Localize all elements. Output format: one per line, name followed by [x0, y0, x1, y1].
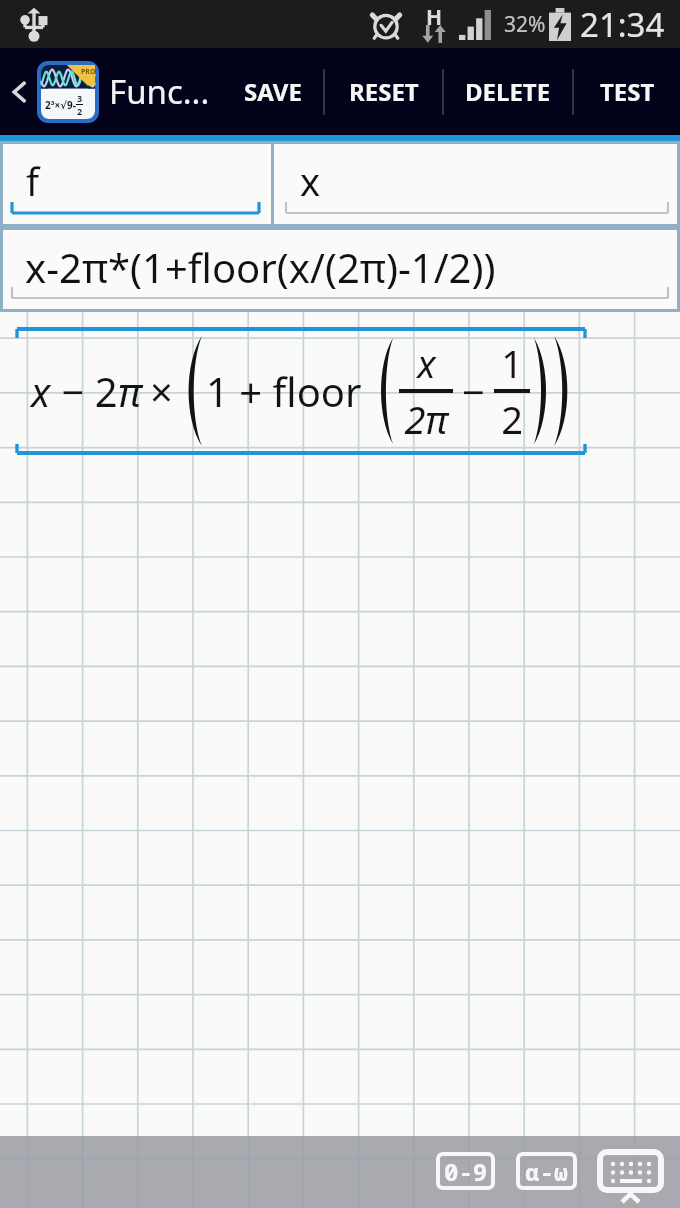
button[interactable]: SAVE — [222, 48, 323, 135]
staticText: 2π — [404, 393, 448, 445]
button[interactable]: TEST — [574, 48, 680, 135]
staticText: 2 — [501, 393, 523, 445]
staticText: RESET — [349, 75, 419, 108]
button[interactable]: x — [274, 141, 680, 227]
button[interactable]: Switch keyboard — [600, 1152, 661, 1204]
staticText: 0-9 — [444, 1155, 488, 1188]
staticText: 1 — [501, 337, 523, 389]
staticText: x — [300, 155, 321, 207]
staticText: × — [150, 364, 173, 418]
staticText: Func... — [109, 69, 210, 114]
staticText: f — [26, 155, 40, 207]
staticText: TEST — [600, 75, 655, 108]
staticText: 2³×√9- — [45, 98, 76, 112]
button[interactable]: Navigate up — [4, 48, 214, 135]
staticText: 32% — [504, 10, 546, 39]
staticText: DELETE — [465, 75, 551, 108]
staticText: 2 — [77, 105, 83, 117]
button[interactable]: RESET — [325, 48, 442, 135]
staticText: x-2π*(1+floor(x/(2π)-1/2)) — [25, 240, 496, 294]
button[interactable]: f — [0, 141, 271, 227]
staticText: α-ω — [525, 1155, 569, 1188]
staticText: x — [31, 364, 51, 418]
other: Navigate up — [6, 79, 32, 105]
button[interactable]: DELETE — [444, 48, 572, 135]
button[interactable]: 0-9 — [436, 1152, 495, 1190]
staticText: 1 + floor — [206, 364, 362, 418]
staticText: 3 — [77, 92, 83, 104]
staticText: 21:34 — [580, 2, 665, 47]
staticText: − — [462, 364, 485, 418]
staticText: π — [118, 364, 142, 418]
staticText: PRO — [81, 67, 96, 77]
staticText: SAVE — [244, 75, 302, 108]
staticText: x — [417, 337, 436, 389]
staticText: − 2 — [51, 364, 118, 418]
staticText: H — [426, 3, 443, 32]
button[interactable]: x-2π*(1+floor(x/(2π)-1/2)) — [0, 227, 680, 312]
button[interactable]: α-ω — [516, 1152, 577, 1190]
